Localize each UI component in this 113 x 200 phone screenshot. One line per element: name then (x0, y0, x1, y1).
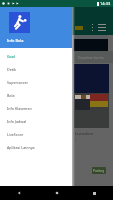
staticText: Bola (7, 93, 15, 98)
staticText: Detik (7, 67, 17, 72)
staticText: Dapatkan berita (78, 55, 104, 60)
button[interactable]: List view (92, 24, 106, 31)
staticText: 14:33 (100, 1, 111, 6)
staticText: Aplikasi Lainnya (7, 145, 35, 150)
button[interactable]: Bola (0, 89, 72, 102)
button[interactable]: Info Jadwal (0, 115, 72, 128)
button[interactable]: Detik (0, 63, 72, 76)
staticText: Info Jadwal (7, 119, 27, 124)
button[interactable]: Supersoccer (0, 76, 72, 89)
staticText: Supersoccer (7, 80, 29, 85)
staticText: Info Klasemen (7, 106, 32, 111)
button[interactable]: Aplikasi Lainnya (0, 141, 72, 154)
button[interactable]: Back (0, 186, 38, 200)
staticText: Info Bola (7, 38, 24, 43)
button[interactable]: Goal (0, 50, 72, 63)
button[interactable]: Recents (76, 186, 113, 200)
staticText: Posting (93, 169, 105, 173)
staticText: LiveScore (7, 132, 24, 137)
staticText: Goal (7, 54, 15, 59)
staticText: Lurusken (75, 131, 94, 137)
button[interactable]: LiveScore (0, 128, 72, 141)
staticText: i (75, 137, 76, 142)
button[interactable]: Posting (92, 167, 106, 174)
button[interactable]: Info Klasemen (0, 102, 72, 115)
button[interactable]: Home (38, 186, 76, 200)
